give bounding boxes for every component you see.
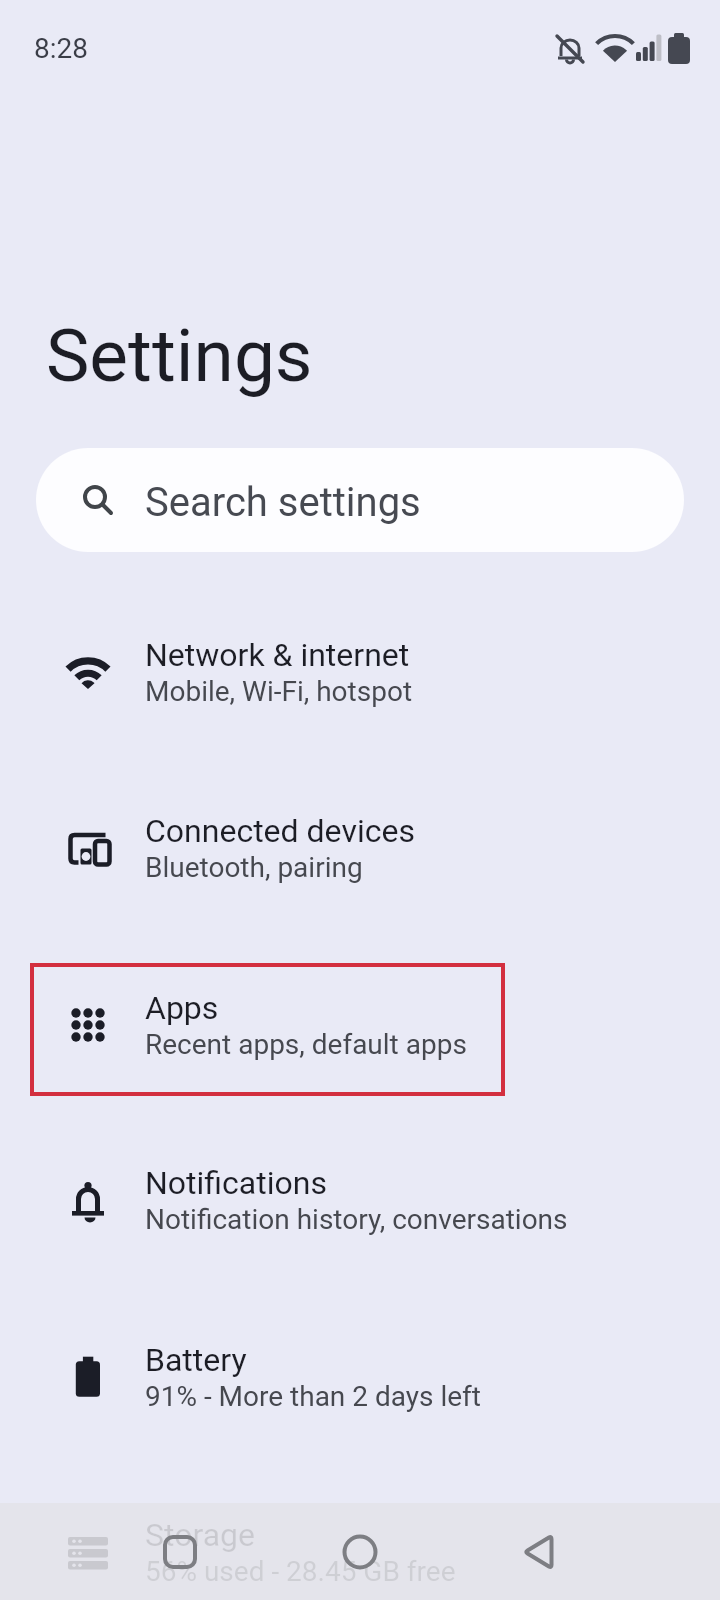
button[interactable]: Connected devices <box>0 760 720 936</box>
staticText: Search settings <box>145 479 421 526</box>
button[interactable]: Notifications <box>0 1112 720 1288</box>
staticText: Battery <box>145 1341 247 1379</box>
button[interactable]: Search settings <box>36 448 684 552</box>
staticText: Settings <box>46 313 313 399</box>
staticText: Notification history, conversations <box>145 1203 568 1236</box>
staticText: Notifications <box>145 1164 327 1202</box>
staticText: Mobile, Wi-Fi, hotspot <box>145 675 413 708</box>
button[interactable]: Storage <box>0 1464 720 1600</box>
staticText: Recent apps, default apps <box>145 1028 467 1061</box>
button[interactable]: Network & internet <box>0 584 720 760</box>
staticText: Connected devices <box>145 812 415 850</box>
staticText: 56% used - 28.45 GB free <box>145 1555 456 1588</box>
staticText: Bluetooth, pairing <box>145 851 363 884</box>
staticText: 91% - More than 2 days left <box>145 1380 481 1413</box>
staticText: 8:28 <box>34 32 88 65</box>
staticText: Apps <box>145 989 219 1027</box>
staticText: Network & internet <box>145 636 410 674</box>
button[interactable]: Apps <box>0 937 720 1113</box>
button[interactable] <box>340 1532 380 1572</box>
button[interactable] <box>160 1532 200 1572</box>
staticText: Storage <box>145 1516 255 1554</box>
button[interactable] <box>520 1532 560 1572</box>
button[interactable]: Battery <box>0 1289 720 1465</box>
